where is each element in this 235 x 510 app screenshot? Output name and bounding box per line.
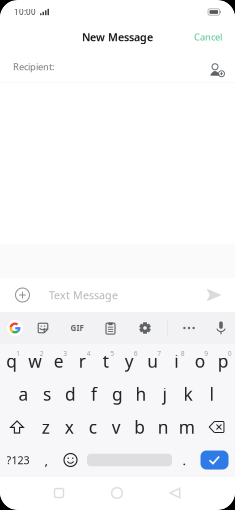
button[interactable]: Attach — [8, 278, 37, 312]
button[interactable]: Stickers — [29, 312, 57, 344]
button[interactable]: Add recipient — [202, 53, 228, 81]
staticText: 6 — [134, 349, 138, 358]
button[interactable]: Done — [194, 443, 235, 476]
staticText: z — [42, 415, 50, 438]
button[interactable]: k — [176, 377, 200, 410]
button[interactable]: t — [94, 344, 117, 377]
button[interactable]: . — [175, 443, 194, 476]
button[interactable]: Emoji — [57, 443, 84, 476]
button[interactable]: , — [36, 443, 57, 476]
button[interactable]: Clipboard — [96, 312, 124, 344]
staticText: t — [103, 349, 109, 372]
staticText: g — [112, 382, 123, 405]
button[interactable]: Back — [146, 477, 204, 509]
staticText: v — [112, 415, 121, 438]
button[interactable]: u — [141, 344, 164, 377]
staticText: ?123 — [6, 453, 29, 467]
staticText: b — [134, 415, 145, 438]
staticText: GIF — [70, 323, 83, 333]
button[interactable]: y — [117, 344, 141, 377]
staticText: 3 — [63, 349, 67, 358]
staticText: r — [79, 349, 86, 372]
staticText: , — [44, 451, 48, 469]
staticText: u — [147, 349, 158, 372]
staticText: n — [158, 415, 169, 438]
staticText: s — [43, 382, 51, 405]
button[interactable]: Settings — [131, 312, 159, 344]
staticText: f — [91, 382, 97, 405]
button[interactable]: r — [70, 344, 94, 377]
staticText: Cancel — [194, 31, 222, 43]
staticText: . — [182, 451, 186, 469]
staticText: Recipient: — [13, 61, 55, 73]
button[interactable]: w — [23, 344, 47, 377]
staticText: k — [183, 382, 192, 405]
button[interactable]: x — [57, 410, 81, 443]
button[interactable]: z — [34, 410, 57, 443]
button[interactable]: d — [59, 377, 82, 410]
staticText: 5 — [110, 349, 114, 358]
button[interactable]: Space — [84, 443, 175, 476]
staticText: 7 — [157, 349, 161, 358]
staticText: i — [174, 349, 178, 372]
staticText: y — [125, 349, 134, 372]
button[interactable]: Google — [0, 312, 29, 344]
button[interactable]: Cancel — [185, 23, 231, 51]
button[interactable]: v — [104, 410, 128, 443]
button[interactable]: l — [200, 377, 223, 410]
staticText: l — [209, 382, 213, 405]
button[interactable]: m — [175, 410, 198, 443]
button[interactable]: c — [81, 410, 104, 443]
button[interactable]: a — [12, 377, 35, 410]
button[interactable]: e — [47, 344, 70, 377]
staticText: w — [28, 349, 42, 372]
button[interactable]: Backspace — [198, 410, 235, 443]
button[interactable]: h — [129, 377, 153, 410]
button[interactable]: g — [106, 377, 129, 410]
button[interactable]: Shift — [0, 410, 34, 443]
button[interactable]: n — [151, 410, 175, 443]
button[interactable]: j — [153, 377, 176, 410]
staticText: a — [18, 382, 28, 405]
staticText: j — [162, 382, 166, 405]
button[interactable]: b — [128, 410, 151, 443]
button[interactable]: Voice input — [208, 312, 234, 344]
staticText: m — [179, 415, 195, 438]
staticText: 0 — [228, 349, 232, 358]
button[interactable]: Home — [88, 477, 146, 509]
staticText: 1 — [16, 349, 20, 358]
staticText: x — [65, 415, 74, 438]
button[interactable]: s — [35, 377, 59, 410]
staticText: 8 — [181, 349, 185, 358]
staticText: e — [54, 349, 64, 372]
staticText: c — [89, 415, 97, 438]
staticText: o — [195, 349, 205, 372]
button[interactable]: o — [188, 344, 211, 377]
staticText: 10:00 — [14, 7, 36, 17]
button[interactable]: GIF — [62, 312, 92, 344]
button[interactable]: Recents — [30, 477, 88, 509]
button[interactable]: f — [82, 377, 106, 410]
button[interactable]: i — [164, 344, 188, 377]
button[interactable]: More options — [174, 312, 204, 344]
button[interactable]: ?123 — [0, 443, 36, 476]
staticText: d — [65, 382, 76, 405]
button[interactable]: p — [211, 344, 235, 377]
staticText: p — [218, 349, 229, 372]
staticText: 4 — [87, 349, 91, 358]
button[interactable]: Send — [200, 278, 228, 312]
staticText: 2 — [40, 349, 44, 358]
staticText: New Message — [82, 30, 153, 44]
staticText: Text Message — [49, 288, 118, 302]
staticText: q — [6, 349, 17, 372]
staticText: h — [135, 382, 146, 405]
staticText: 9 — [204, 349, 208, 358]
button[interactable]: q — [0, 344, 23, 377]
